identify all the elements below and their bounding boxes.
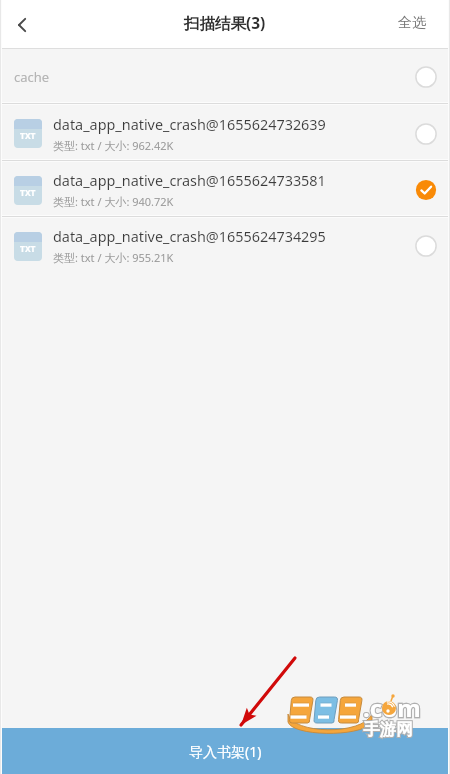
button[interactable]: 导入书架(1) (0, 728, 450, 774)
staticText: 手游网 (363, 719, 413, 740)
staticText: 类型: txt / 大小: 955.21K (53, 250, 174, 265)
button[interactable]: TXT (0, 105, 450, 162)
staticText: .com (363, 691, 421, 724)
staticText: data_app_native_crash@1655624734295 (53, 227, 326, 247)
staticText: cache (14, 68, 50, 86)
staticText: 类型: txt / 大小: 962.42K (53, 138, 174, 153)
staticText: TXT (20, 130, 36, 142)
button[interactable]: 全选 (398, 1, 426, 49)
staticText: 导入书架(1) (189, 742, 262, 761)
staticText: .com (363, 691, 421, 724)
button[interactable]: Back (0, 3, 44, 47)
staticText: TXT (20, 187, 36, 199)
staticText: TXT (20, 243, 36, 255)
button[interactable]: cache (0, 49, 450, 105)
staticText: data_app_native_crash@1655624732639 (53, 115, 326, 135)
button[interactable]: TXT (0, 218, 450, 274)
staticText: 扫描结果(3) (184, 12, 266, 33)
staticText: 全选 (398, 14, 426, 32)
button[interactable]: TXT (0, 162, 450, 218)
staticText: data_app_native_crash@1655624733581 (53, 171, 326, 191)
staticText: 类型: txt / 大小: 940.72K (53, 194, 174, 209)
staticText: 手游网 (363, 719, 413, 740)
